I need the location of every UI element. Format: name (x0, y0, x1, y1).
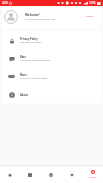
button[interactable]: Apps (20, 166, 40, 177)
button[interactable]: Rate (2, 49, 101, 67)
staticText: More apps from developer (20, 77, 48, 80)
staticText: Welcome! (25, 13, 40, 17)
staticText: 4:08 (2, 1, 8, 5)
button[interactable]: More (2, 67, 101, 85)
staticText: 100% (89, 1, 96, 5)
staticText: LOGIN (86, 14, 94, 17)
staticText: Share your idea and feedback (20, 59, 51, 62)
button[interactable]: Settings (40, 166, 61, 177)
button[interactable]: Home (0, 166, 20, 177)
button[interactable]: Profile (82, 166, 103, 178)
staticText: Not registered? Register Now (25, 18, 56, 21)
staticText: About (20, 93, 28, 97)
staticText: More (20, 73, 27, 77)
button[interactable]: About (2, 85, 101, 103)
staticText: App Terms & Policies (20, 41, 42, 44)
button[interactable]: Privacy Policy (2, 31, 101, 49)
button[interactable]: Welcome! (2, 7, 101, 29)
staticText: Privacy Policy (20, 37, 38, 41)
staticText: Rate (20, 55, 26, 59)
button[interactable]: Favourites (61, 166, 82, 177)
staticText: Profile (89, 175, 97, 178)
